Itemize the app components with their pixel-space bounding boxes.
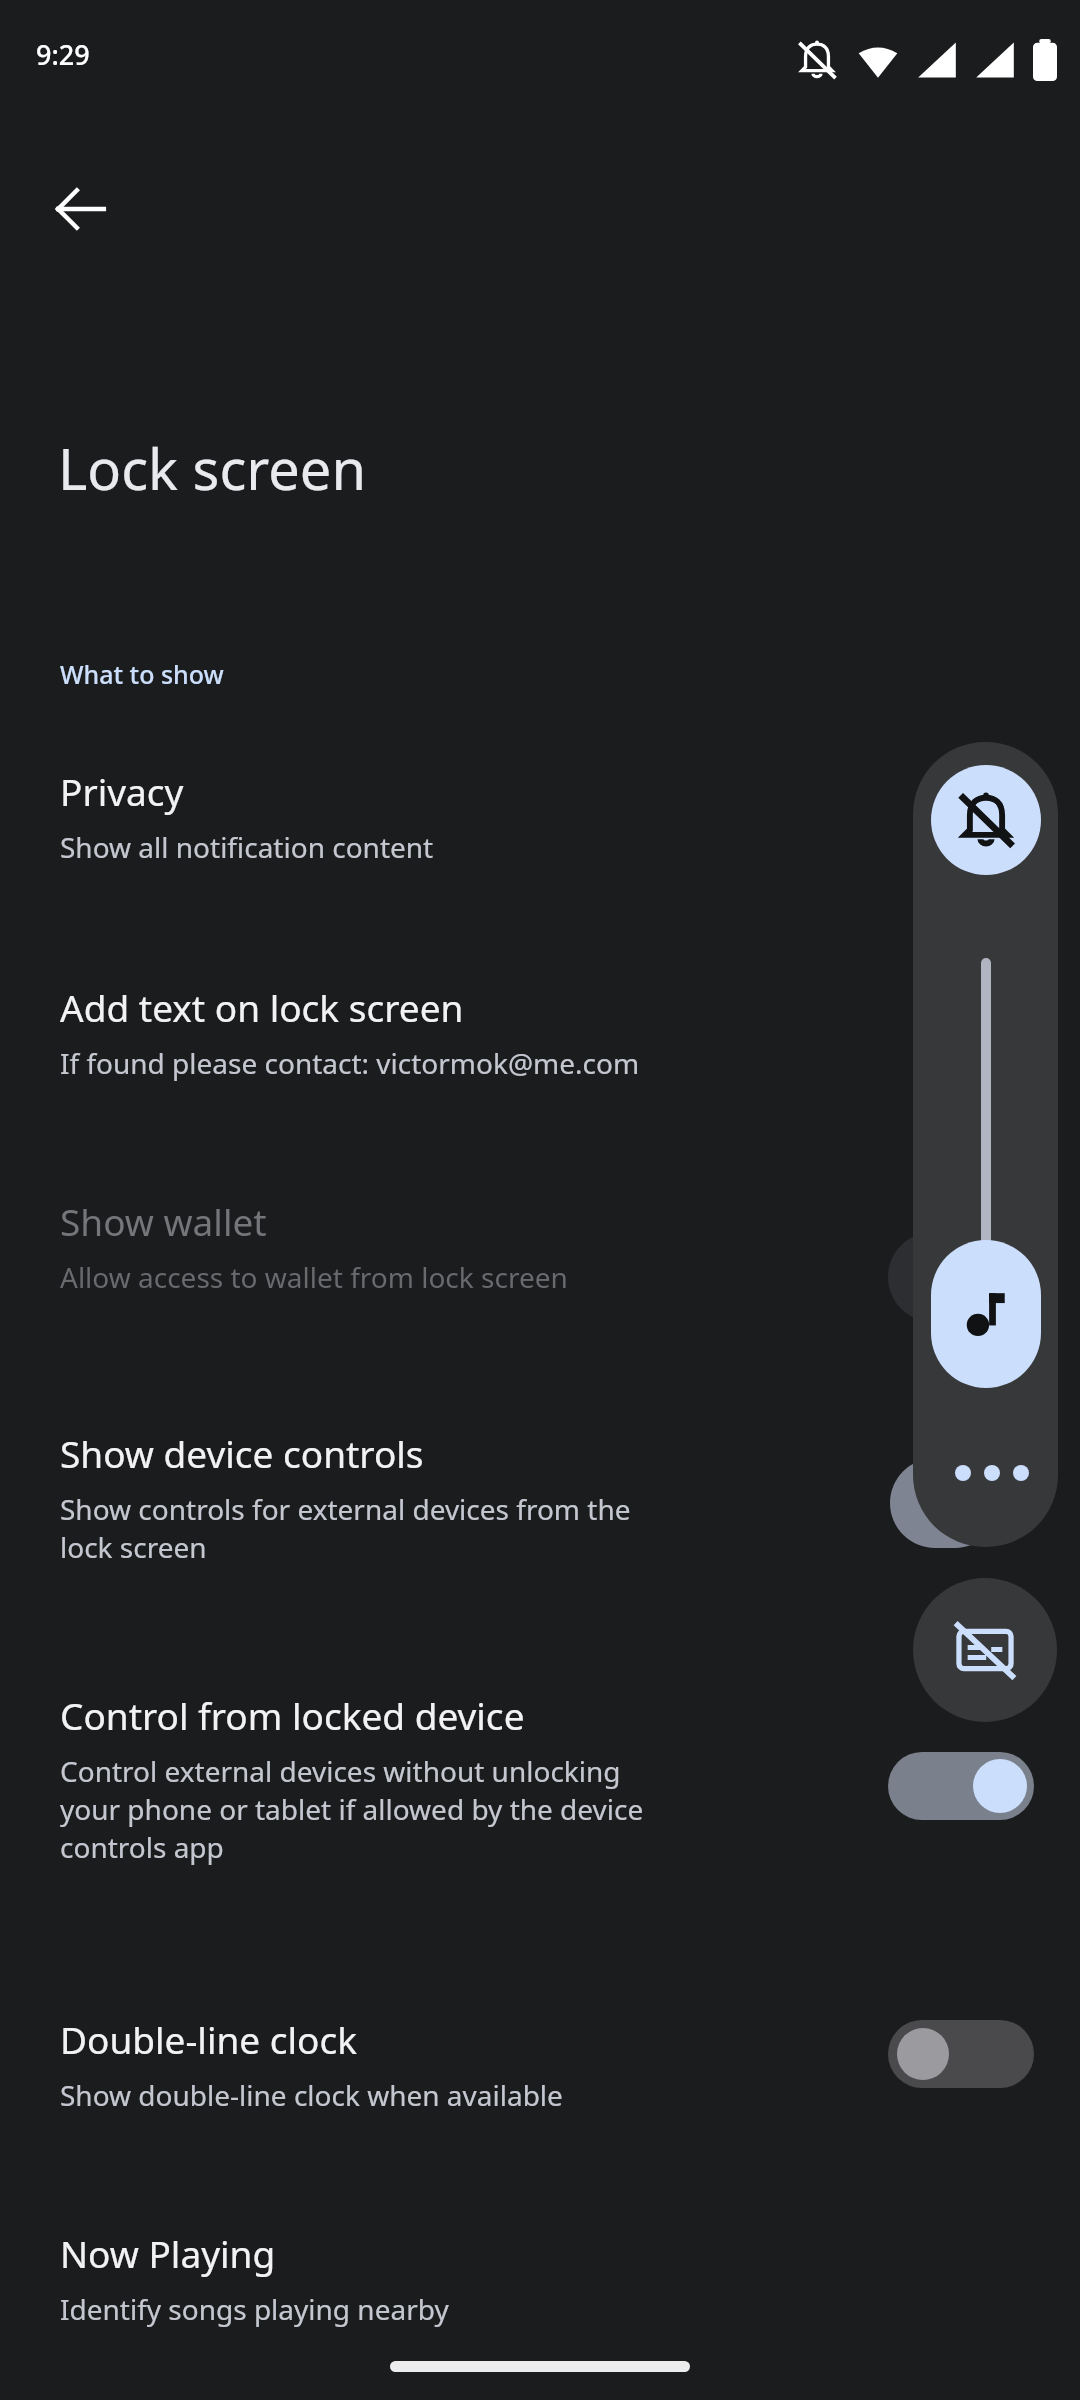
staticText: Privacy <box>60 766 184 816</box>
staticText: Add text on lock screen <box>60 982 464 1032</box>
staticText: What to show <box>60 657 224 691</box>
staticText: Identify songs playing nearby <box>60 2290 449 2328</box>
staticText: Allow access to wallet from lock screen <box>60 1258 568 1296</box>
button[interactable]: Captions off <box>913 1578 1057 1722</box>
button[interactable]: Show wallet <box>0 1190 1080 1310</box>
button[interactable]: Media volume <box>931 1240 1041 1388</box>
staticText: Show wallet <box>60 1196 267 1246</box>
staticText: Show device controls <box>60 1428 424 1478</box>
staticText: your phone or tablet if allowed by the d… <box>60 1790 644 1828</box>
button[interactable]: Show device controls <box>0 1422 1080 1580</box>
button[interactable]: Double-line clock <box>0 2008 1080 2128</box>
button[interactable] <box>888 2020 1034 2088</box>
button[interactable]: Ring off <box>931 765 1041 875</box>
staticText: Show controls for external devices from … <box>60 1490 631 1528</box>
staticText: lock screen <box>60 1528 207 1566</box>
staticText: Control external devices without unlocki… <box>60 1752 621 1790</box>
staticText: Double-line clock <box>60 2014 357 2064</box>
button[interactable]: Now Playing <box>0 2222 1080 2342</box>
staticText: Lock screen <box>58 430 367 506</box>
staticText: Show all notification content <box>60 828 434 866</box>
staticText: Now Playing <box>60 2228 276 2278</box>
staticText: controls app <box>60 1828 224 1866</box>
button[interactable] <box>888 1752 1034 1820</box>
staticText: If found please contact: victormok@me.co… <box>60 1044 640 1082</box>
button[interactable]: Privacy <box>0 760 1080 880</box>
staticText: 9:29 <box>36 36 90 73</box>
button[interactable]: Back <box>24 152 138 266</box>
button[interactable]: Add text on lock screen <box>0 976 1080 1096</box>
button[interactable]: Control from locked device <box>0 1684 1080 1880</box>
staticText: Control from locked device <box>60 1690 525 1740</box>
staticText: Show double-line clock when available <box>60 2076 563 2114</box>
